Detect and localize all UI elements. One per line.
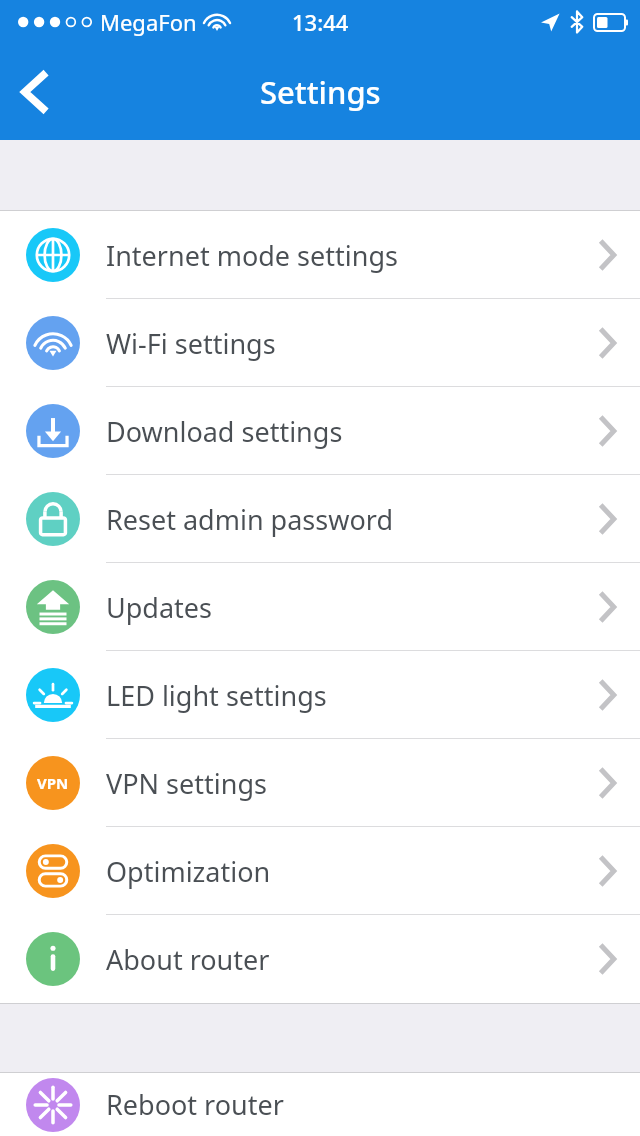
staticText: About router <box>106 941 270 978</box>
button[interactable]: Internet mode settings <box>0 211 640 299</box>
staticText: Internet mode settings <box>106 237 398 274</box>
button[interactable]: Wi-Fi settings <box>0 299 640 387</box>
staticText: MegaFon <box>100 7 197 37</box>
staticText: LED light settings <box>106 677 327 714</box>
button[interactable]: Updates <box>0 563 640 651</box>
button[interactable]: About router <box>0 915 640 1003</box>
button[interactable]: Optimization <box>0 827 640 915</box>
button[interactable]: Reset admin password <box>0 475 640 563</box>
button[interactable]: VPN <box>0 739 640 827</box>
staticText: VPN settings <box>106 765 267 802</box>
button[interactable]: Download settings <box>0 387 640 475</box>
staticText: Settings <box>260 71 381 113</box>
staticText: Optimization <box>106 853 271 890</box>
staticText: Wi-Fi settings <box>106 325 276 362</box>
staticText: Download settings <box>106 413 343 450</box>
staticText: Updates <box>106 589 213 626</box>
button[interactable]: LED light settings <box>0 651 640 739</box>
button[interactable]: Reboot router <box>0 1073 640 1136</box>
button[interactable]: Back <box>4 60 68 124</box>
staticText: Reboot router <box>106 1086 284 1123</box>
staticText: 13:44 <box>292 7 349 37</box>
staticText: VPN <box>37 773 69 793</box>
staticText: Reset admin password <box>106 501 394 538</box>
